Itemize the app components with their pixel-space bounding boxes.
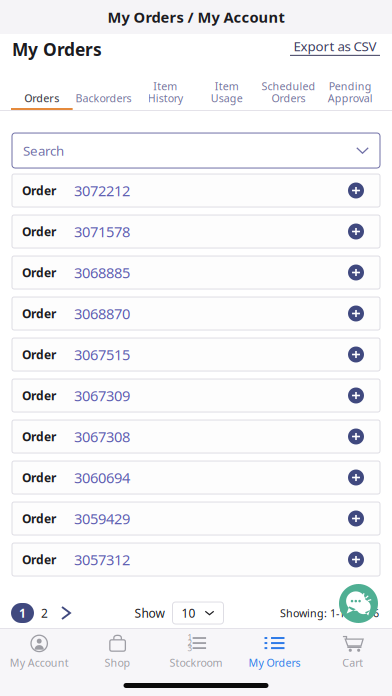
staticText: 3068885 bbox=[74, 263, 130, 282]
button[interactable]: Item bbox=[134, 64, 196, 110]
staticText: Order bbox=[22, 182, 56, 198]
button[interactable]: Export as CSV bbox=[290, 37, 380, 56]
button[interactable]: 10 bbox=[172, 602, 223, 624]
staticText: My Orders bbox=[12, 38, 102, 61]
staticText: My Orders bbox=[248, 655, 300, 670]
button[interactable]: Order bbox=[12, 256, 380, 289]
staticText: 10 bbox=[181, 605, 195, 621]
button[interactable]: My Orders bbox=[235, 629, 314, 675]
staticText: Backorders bbox=[75, 91, 131, 105]
staticText: Item bbox=[153, 79, 177, 93]
button[interactable]: Order bbox=[12, 215, 380, 248]
button[interactable]: My Account bbox=[0, 629, 78, 675]
button[interactable]: Cart bbox=[314, 629, 392, 675]
staticText: 3060694 bbox=[74, 468, 130, 487]
button[interactable]: 1 bbox=[11, 603, 34, 623]
staticText: Stockroom bbox=[169, 655, 222, 670]
staticText: 3 bbox=[187, 643, 192, 653]
staticText: 3067515 bbox=[74, 345, 130, 364]
button[interactable]: Order bbox=[12, 543, 380, 576]
staticText: 2 bbox=[187, 638, 192, 648]
button[interactable]: Scheduled bbox=[258, 64, 319, 110]
button[interactable]: Pending bbox=[319, 64, 381, 110]
staticText: My Account bbox=[10, 655, 69, 670]
staticText: 2 bbox=[41, 605, 48, 621]
staticText: Order bbox=[22, 305, 56, 321]
staticText: 1 bbox=[19, 605, 26, 621]
button[interactable]: Chat support bbox=[339, 584, 378, 623]
staticText: My Orders / My Account bbox=[107, 7, 284, 27]
staticText: Order bbox=[22, 223, 56, 239]
button[interactable]: Shop bbox=[78, 629, 157, 675]
staticText: Order bbox=[22, 510, 56, 526]
button[interactable]: Search bbox=[12, 133, 380, 168]
staticText: Scheduled bbox=[261, 79, 315, 93]
button[interactable]: Backorders bbox=[73, 64, 134, 110]
staticText: Showing: 1-10 of 16 bbox=[280, 606, 379, 620]
button[interactable]: Order bbox=[12, 297, 380, 330]
staticText: Approval bbox=[328, 91, 373, 105]
staticText: 3059429 bbox=[74, 509, 130, 528]
button[interactable]: 1 bbox=[157, 629, 235, 675]
staticText: 3067308 bbox=[74, 427, 130, 446]
staticText: Order bbox=[22, 387, 56, 403]
staticText: Order bbox=[22, 346, 56, 362]
staticText: Order bbox=[22, 469, 56, 485]
staticText: Show bbox=[134, 605, 164, 621]
staticText: 3072212 bbox=[74, 181, 130, 200]
staticText: History bbox=[148, 91, 183, 105]
staticText: Search bbox=[23, 142, 64, 159]
staticText: Order bbox=[22, 428, 56, 444]
staticText: Order bbox=[22, 264, 56, 280]
button[interactable]: 2 bbox=[37, 603, 52, 623]
staticText: 3057312 bbox=[74, 550, 130, 569]
staticText: Shop bbox=[105, 655, 131, 670]
button[interactable]: Order bbox=[12, 461, 380, 494]
button[interactable]: Order bbox=[12, 502, 380, 535]
staticText: Orders bbox=[24, 91, 59, 105]
staticText: 3071578 bbox=[74, 222, 130, 241]
button[interactable]: Order bbox=[12, 174, 380, 207]
staticText: Cart bbox=[342, 655, 363, 670]
button[interactable]: Order bbox=[12, 338, 380, 371]
staticText: 3067309 bbox=[74, 386, 130, 405]
staticText: Item bbox=[215, 79, 239, 93]
button[interactable]: Item bbox=[196, 64, 258, 110]
button[interactable]: Order bbox=[12, 420, 380, 453]
staticText: 3068870 bbox=[74, 304, 130, 323]
staticText: Order bbox=[22, 551, 56, 567]
button[interactable]: Orders bbox=[11, 64, 73, 110]
button[interactable]: Next page bbox=[54, 601, 78, 625]
staticText: Export as CSV bbox=[293, 37, 376, 55]
staticText: Orders bbox=[271, 91, 305, 105]
staticText: Pending bbox=[329, 79, 372, 93]
button[interactable]: Order bbox=[12, 379, 380, 412]
staticText: 1 bbox=[187, 633, 192, 643]
staticText: Usage bbox=[211, 91, 243, 105]
